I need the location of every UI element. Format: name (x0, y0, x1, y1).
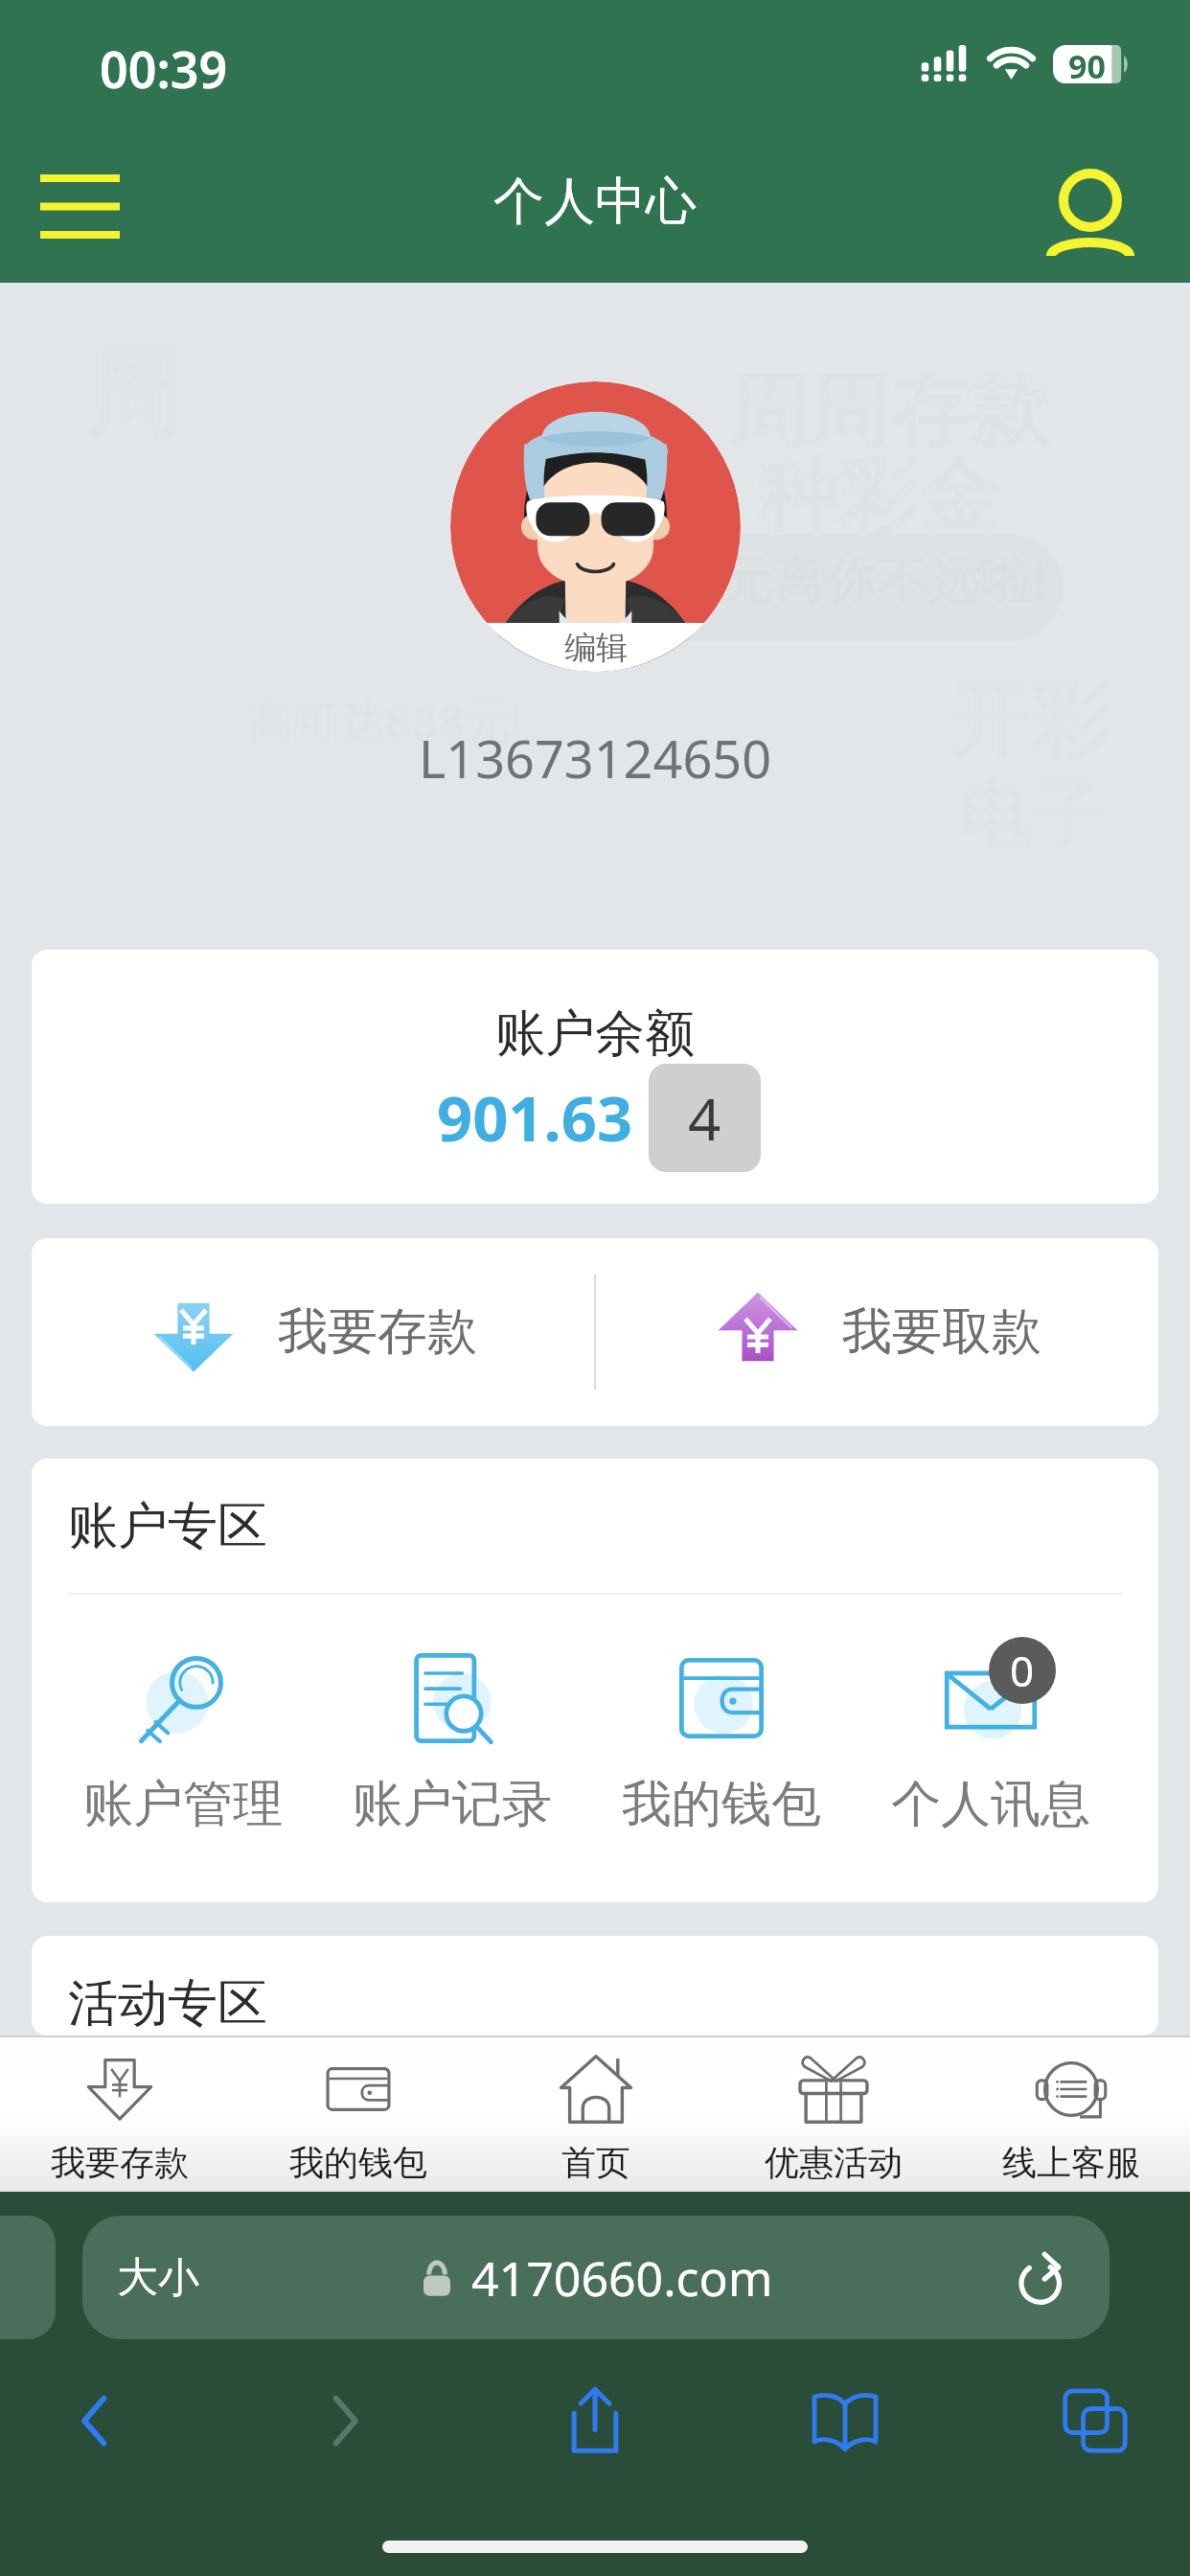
staticText: 00:39 (100, 34, 228, 103)
button[interactable]: 编辑 (450, 381, 741, 672)
staticText: L13673124650 (419, 723, 772, 793)
button[interactable]: 我要取款 (596, 1238, 1158, 1426)
button[interactable]: 4 (649, 1064, 761, 1172)
staticText: 账户记录 (353, 1773, 552, 1836)
button[interactable]: Back (38, 2364, 151, 2477)
staticText: 个人讯息 (891, 1773, 1090, 1836)
button[interactable]: 我要存款 (32, 1238, 594, 1426)
staticText: 我要存款 (278, 1300, 477, 1364)
button[interactable]: 我的钱包 (586, 1648, 856, 1836)
button[interactable]: 我的钱包 (239, 2035, 477, 2192)
button[interactable] (0, 2216, 56, 2339)
staticText: 优惠活动 (765, 2141, 903, 2184)
staticText: 账户管理 (83, 1773, 283, 1836)
button[interactable]: 账户记录 (317, 1648, 586, 1836)
staticText: 大小 (117, 2252, 199, 2304)
button[interactable]: 线上客服 (952, 2035, 1190, 2192)
button[interactable]: 我要存款 (0, 2035, 239, 2192)
button[interactable]: 首页 (477, 2035, 715, 2192)
staticText: 账户余额 (495, 1002, 695, 1066)
button[interactable]: Share (538, 2364, 652, 2477)
staticText: 我要取款 (842, 1300, 1041, 1364)
staticText: 4 (688, 1079, 721, 1158)
button[interactable]: 大小 (82, 2216, 1110, 2339)
staticText: 4170660.com (471, 2245, 773, 2311)
staticText: 我的钱包 (622, 1773, 821, 1836)
staticText: 高可达888元! (247, 690, 523, 753)
staticText: 我要存款 (51, 2141, 189, 2184)
button[interactable]: Menu (19, 146, 140, 266)
staticText: 活动专区 (68, 1972, 267, 2035)
staticText: 我的钱包 (289, 2141, 427, 2184)
button[interactable]: 账户管理 (48, 1648, 317, 1836)
staticText: 首页 (561, 2141, 630, 2184)
button[interactable]: Forward (288, 2364, 401, 2477)
staticText: 0 (1010, 1642, 1035, 1699)
button[interactable]: 优惠活动 (715, 2035, 952, 2192)
staticText: 90 (1068, 44, 1106, 82)
staticText: 账户专区 (68, 1495, 267, 1558)
button[interactable]: 0 (856, 1648, 1125, 1836)
staticText: 编辑 (564, 628, 628, 668)
staticText: 901.63 (437, 1075, 633, 1161)
staticText: 线上客服 (1002, 2141, 1140, 2184)
button[interactable]: Reload (1006, 2242, 1079, 2314)
button[interactable]: 0 (989, 1637, 1056, 1704)
button[interactable]: Bookmarks (789, 2364, 902, 2477)
staticText: 个人中心 (493, 170, 697, 234)
staticText: 888元离你不远啦! (632, 543, 1046, 614)
button[interactable]: Tabs (1039, 2364, 1152, 2477)
button[interactable]: Profile (1029, 150, 1152, 273)
